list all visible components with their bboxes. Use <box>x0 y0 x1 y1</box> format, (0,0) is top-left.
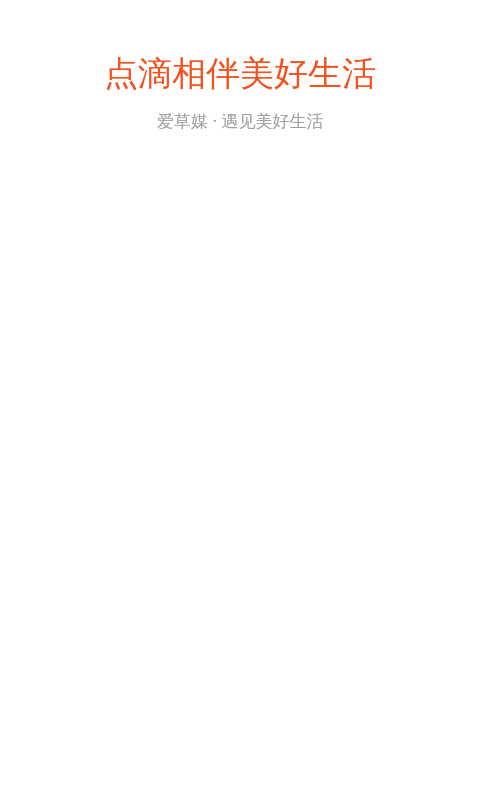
staticText: 爱草媒 · 遇见美好生活 <box>157 109 324 132</box>
staticText: 点滴相伴美好生活 <box>104 52 376 95</box>
